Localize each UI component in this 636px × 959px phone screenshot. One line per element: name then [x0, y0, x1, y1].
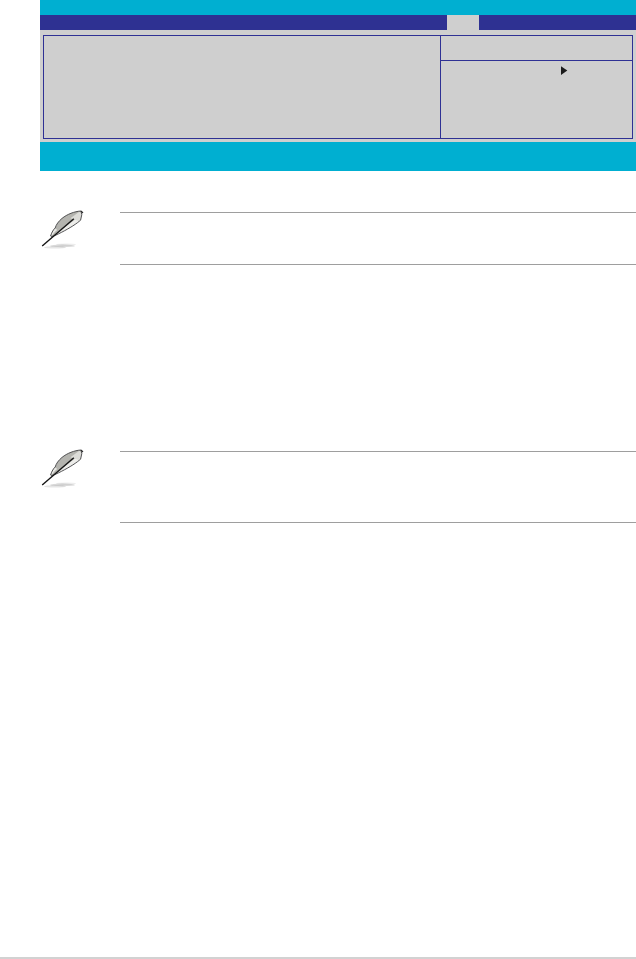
button[interactable]: Note: [40, 445, 88, 489]
button[interactable]: Open sub-menu: [559, 64, 570, 77]
button[interactable]: Note: [40, 206, 88, 250]
